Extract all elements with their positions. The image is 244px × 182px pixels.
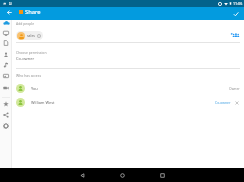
- button[interactable]: Devices: [1, 28, 11, 38]
- button[interactable]: Home: [115, 168, 129, 182]
- button[interactable]: Documents: [1, 38, 11, 48]
- button[interactable]: You: [16, 84, 240, 93]
- button[interactable]: Shared: [1, 110, 11, 120]
- button[interactable]: Back: [75, 168, 89, 182]
- staticText: Choose permission: [16, 50, 47, 55]
- staticText: Share: [25, 8, 41, 16]
- button[interactable]: People: [1, 50, 11, 60]
- button[interactable]: Starred: [1, 99, 11, 109]
- staticText: Owner: [229, 86, 240, 91]
- button[interactable]: Music: [1, 60, 11, 70]
- staticText: Co-owner: [215, 100, 231, 105]
- button[interactable]: Photos: [1, 71, 11, 81]
- button[interactable]: Add from contacts: [230, 31, 240, 40]
- button[interactable]: Videos: [1, 83, 11, 93]
- staticText: 11:06: [233, 1, 243, 6]
- staticText: Add people: [16, 21, 35, 26]
- button[interactable]: Done: [230, 8, 241, 19]
- staticText: You: [31, 86, 38, 91]
- button[interactable]: Recents: [155, 168, 169, 182]
- button[interactable]: Remove: [234, 100, 240, 106]
- staticText: Co-owner: [16, 56, 35, 61]
- button[interactable]: Cloud: [1, 17, 11, 27]
- button[interactable]: Settings: [1, 121, 11, 131]
- staticText: William West: [31, 100, 55, 105]
- button[interactable]: William West: [16, 98, 240, 107]
- button[interactable]: sales: [16, 31, 43, 40]
- button[interactable]: Back: [4, 7, 14, 17]
- staticText: sales: [27, 33, 35, 38]
- staticText: Who has access: [16, 73, 42, 78]
